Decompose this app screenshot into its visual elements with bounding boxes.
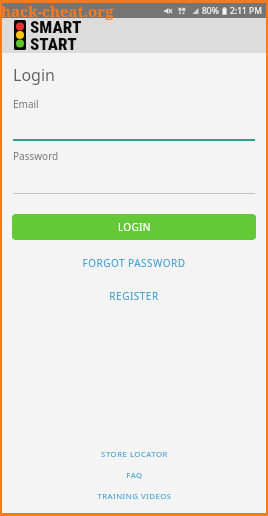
button[interactable]: FORGOT PASSWORD (2, 256, 266, 270)
staticText: 2:11 PM (230, 5, 262, 17)
button[interactable]: TRAINING VIDEOS (2, 491, 266, 502)
staticText: hack-cheat.org (1, 1, 114, 21)
staticText: REGISTER (109, 289, 159, 303)
staticText: START (30, 34, 77, 54)
staticText: Login (13, 64, 55, 86)
button[interactable]: Email (2, 97, 266, 141)
staticText: 80% (202, 5, 219, 17)
staticText: FORGOT PASSWORD (82, 256, 186, 270)
button[interactable]: LOGIN (12, 214, 256, 240)
button[interactable]: Smart Start home (14, 20, 26, 50)
button[interactable]: REGISTER (2, 289, 266, 303)
button[interactable]: STORE LOCATOR (2, 449, 266, 460)
button[interactable]: Password (2, 149, 266, 194)
button[interactable]: FAQ (2, 470, 266, 481)
staticText: FAQ (126, 470, 143, 481)
staticText: Password (13, 149, 59, 163)
staticText: SMART (30, 17, 82, 37)
staticText: STORE LOCATOR (101, 449, 168, 460)
staticText: LOGIN (118, 220, 151, 234)
staticText: TRAINING VIDEOS (97, 491, 172, 502)
staticText: Email (13, 97, 39, 111)
